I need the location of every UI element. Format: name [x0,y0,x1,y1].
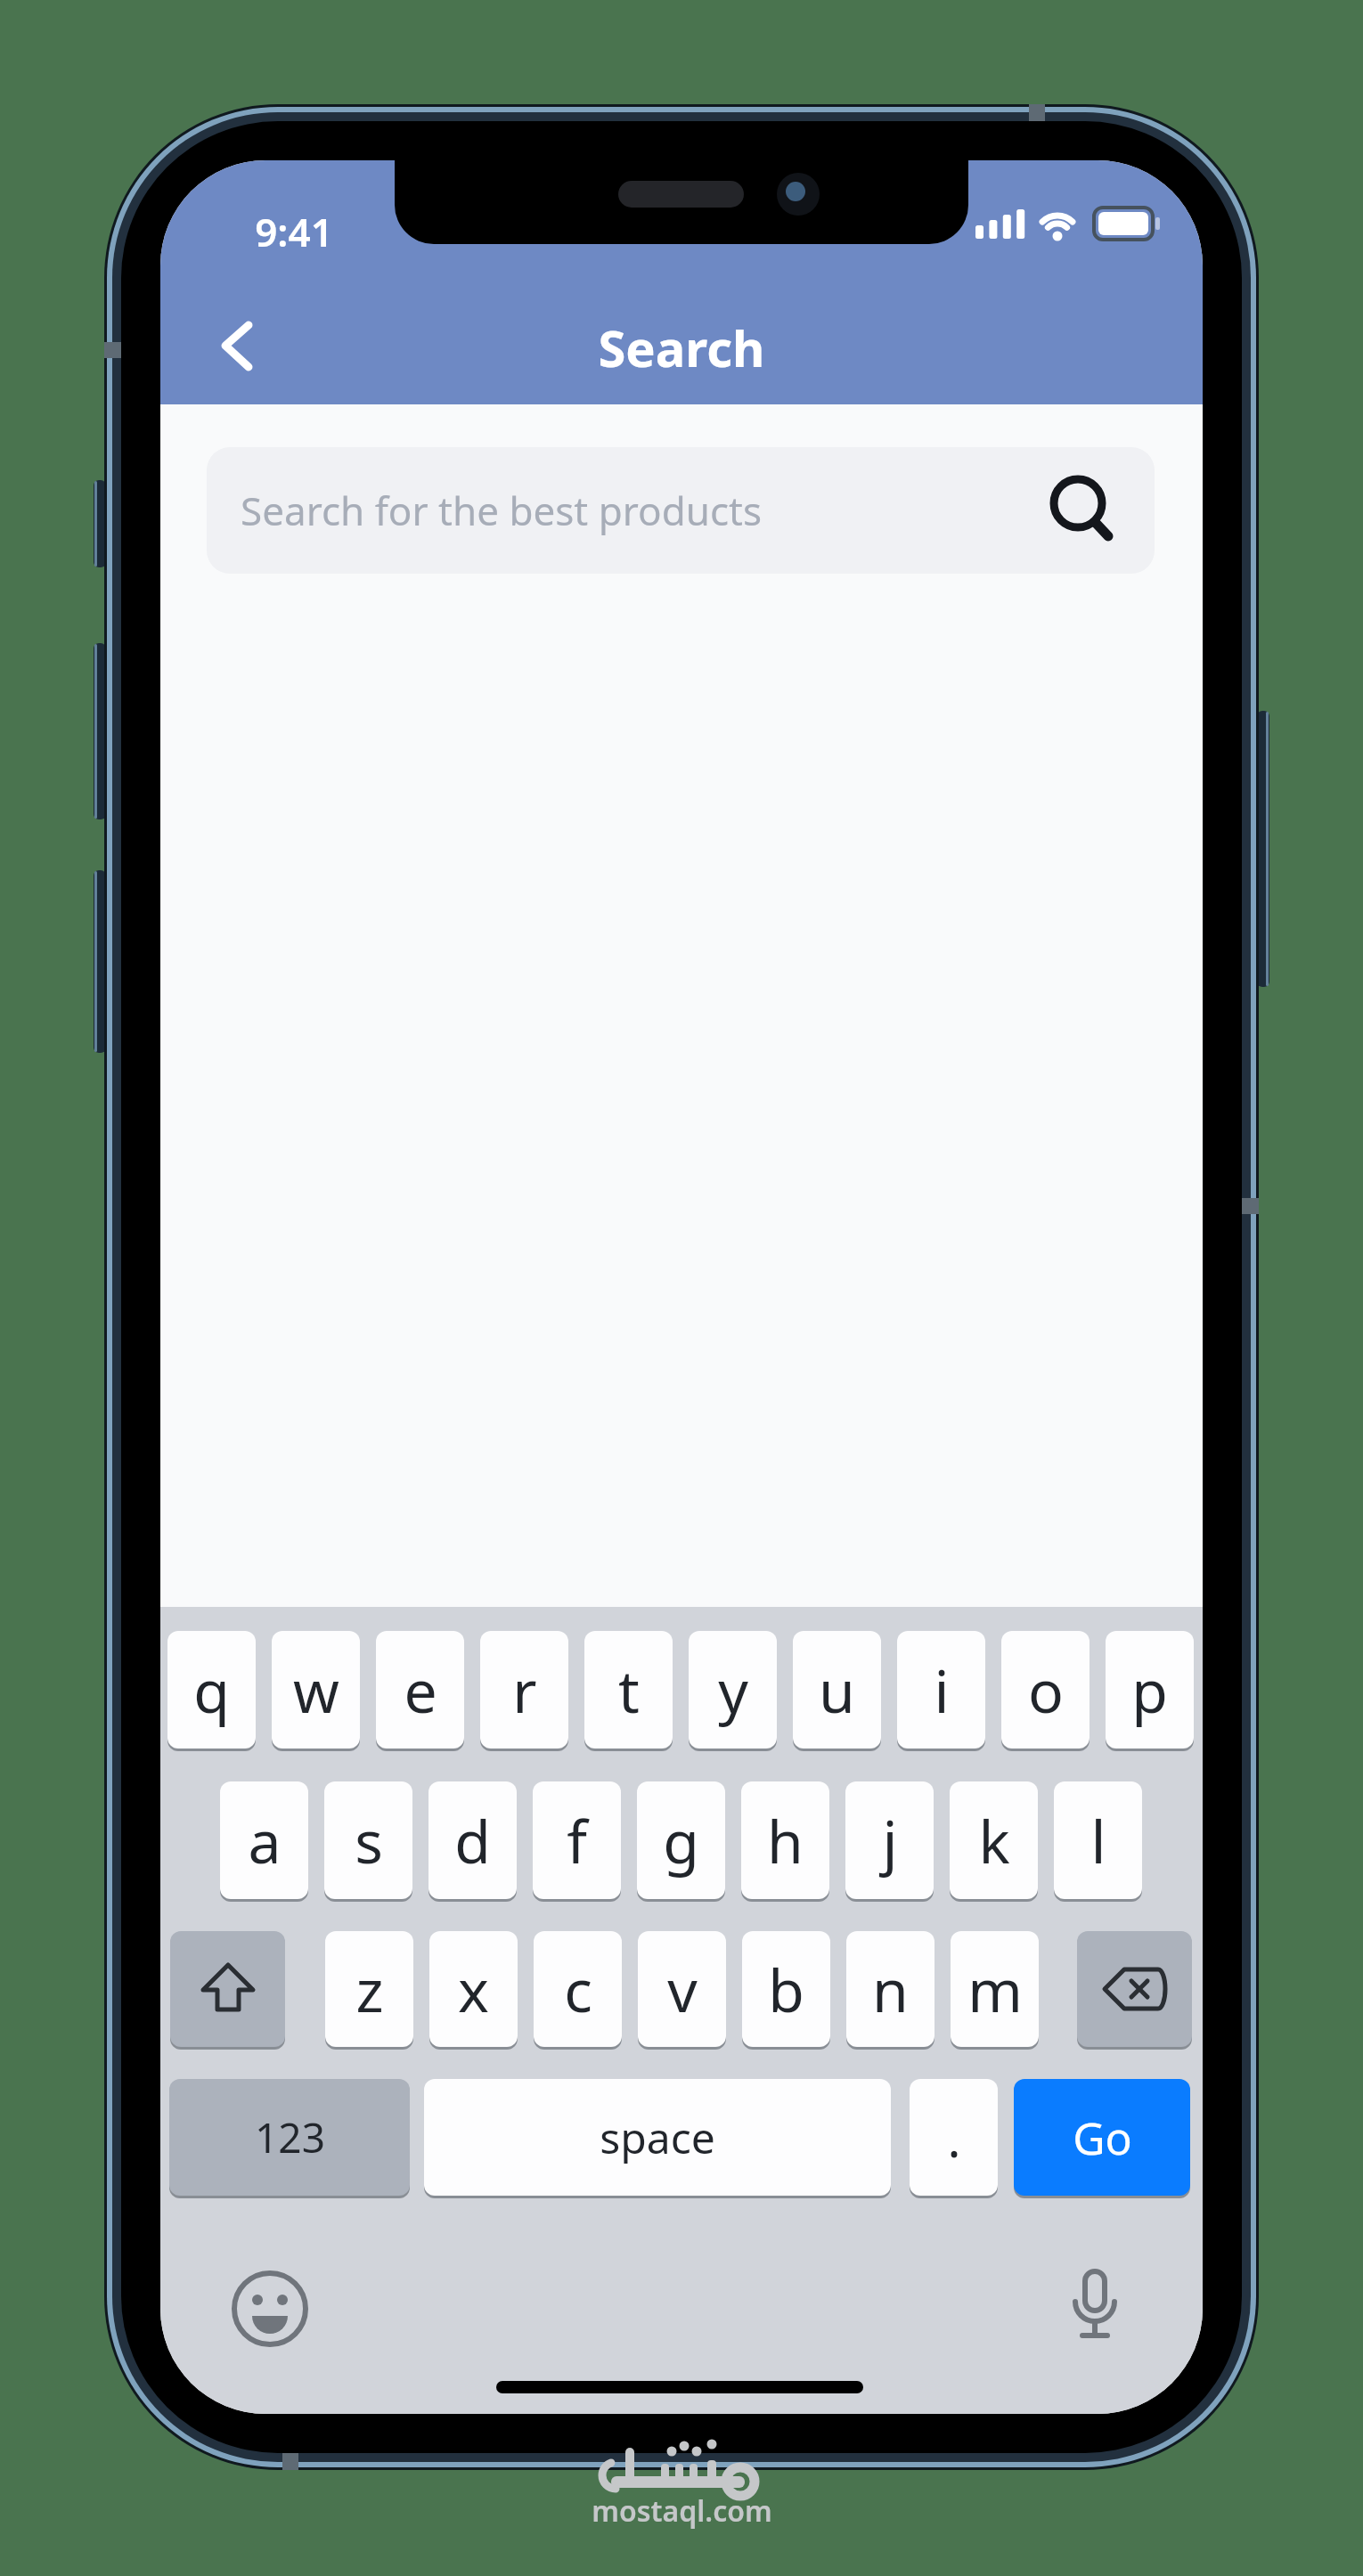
button[interactable]: . [910,2079,998,2196]
staticText: y [718,1650,748,1730]
button[interactable]: p [1106,1631,1194,1749]
button[interactable]: r [480,1631,568,1749]
button[interactable]: u [793,1631,881,1749]
button[interactable]: f [533,1781,621,1899]
staticText: t [618,1650,640,1730]
staticText: h [767,1800,804,1880]
staticText: a [248,1800,282,1880]
staticText: j [882,1800,898,1880]
staticText: Search [598,314,765,381]
staticText: space [600,2108,715,2166]
button[interactable]: w [272,1631,360,1749]
staticText: l [1090,1800,1106,1880]
staticText: i [934,1650,950,1730]
button[interactable] [170,1931,285,2047]
button[interactable]: d [428,1781,517,1899]
button[interactable]: b [742,1931,830,2047]
staticText: m [967,1949,1023,2029]
button[interactable]: z [325,1931,413,2047]
staticText: 123 [255,2109,325,2165]
staticText: b [768,1949,804,2029]
button[interactable] [231,2270,309,2348]
button[interactable]: c [534,1931,622,2047]
staticText: 9:41 [255,205,333,255]
button[interactable]: i [897,1631,985,1749]
button[interactable]: s [324,1781,412,1899]
staticText: Search for the best products [241,484,762,537]
button[interactable]: k [950,1781,1038,1899]
staticText: k [978,1800,1010,1880]
staticText: z [355,1949,384,2029]
staticText: r [512,1650,537,1730]
button[interactable]: g [637,1781,725,1899]
button[interactable]: q [167,1631,256,1749]
button[interactable]: space [424,2079,891,2196]
button[interactable]: n [846,1931,935,2047]
staticText: w [293,1650,339,1730]
button[interactable]: 123 [169,2079,410,2196]
button[interactable] [1056,2266,1134,2352]
staticText: o [1028,1650,1064,1730]
staticText: d [454,1800,491,1880]
button[interactable] [214,312,267,383]
button[interactable]: a [220,1781,308,1899]
staticText: n [872,1949,909,2029]
staticText: g [663,1800,699,1880]
button[interactable]: x [429,1931,518,2047]
button[interactable]: y [689,1631,777,1749]
button[interactable]: Go [1014,2079,1190,2196]
button[interactable]: e [376,1631,464,1749]
button[interactable]: v [638,1931,726,2047]
staticText: v [667,1949,698,2029]
staticText: f [567,1800,587,1880]
staticText: mostaql.com [592,2491,772,2531]
button[interactable] [1077,1931,1192,2047]
button[interactable]: h [741,1781,829,1899]
button[interactable]: j [845,1781,934,1899]
button[interactable]: t [584,1631,673,1749]
staticText: e [404,1650,437,1730]
staticText: q [193,1650,230,1730]
staticText: c [564,1949,592,2029]
staticText: x [458,1949,489,2029]
button[interactable]: l [1054,1781,1142,1899]
button[interactable]: m [951,1931,1039,2047]
button[interactable]: Search for the best products [207,447,1155,574]
button[interactable]: o [1001,1631,1090,1749]
staticText: p [1131,1650,1168,1730]
staticText: u [819,1650,855,1730]
staticText: Go [1073,2107,1132,2168]
staticText: . [947,2104,961,2172]
staticText: s [355,1800,383,1880]
